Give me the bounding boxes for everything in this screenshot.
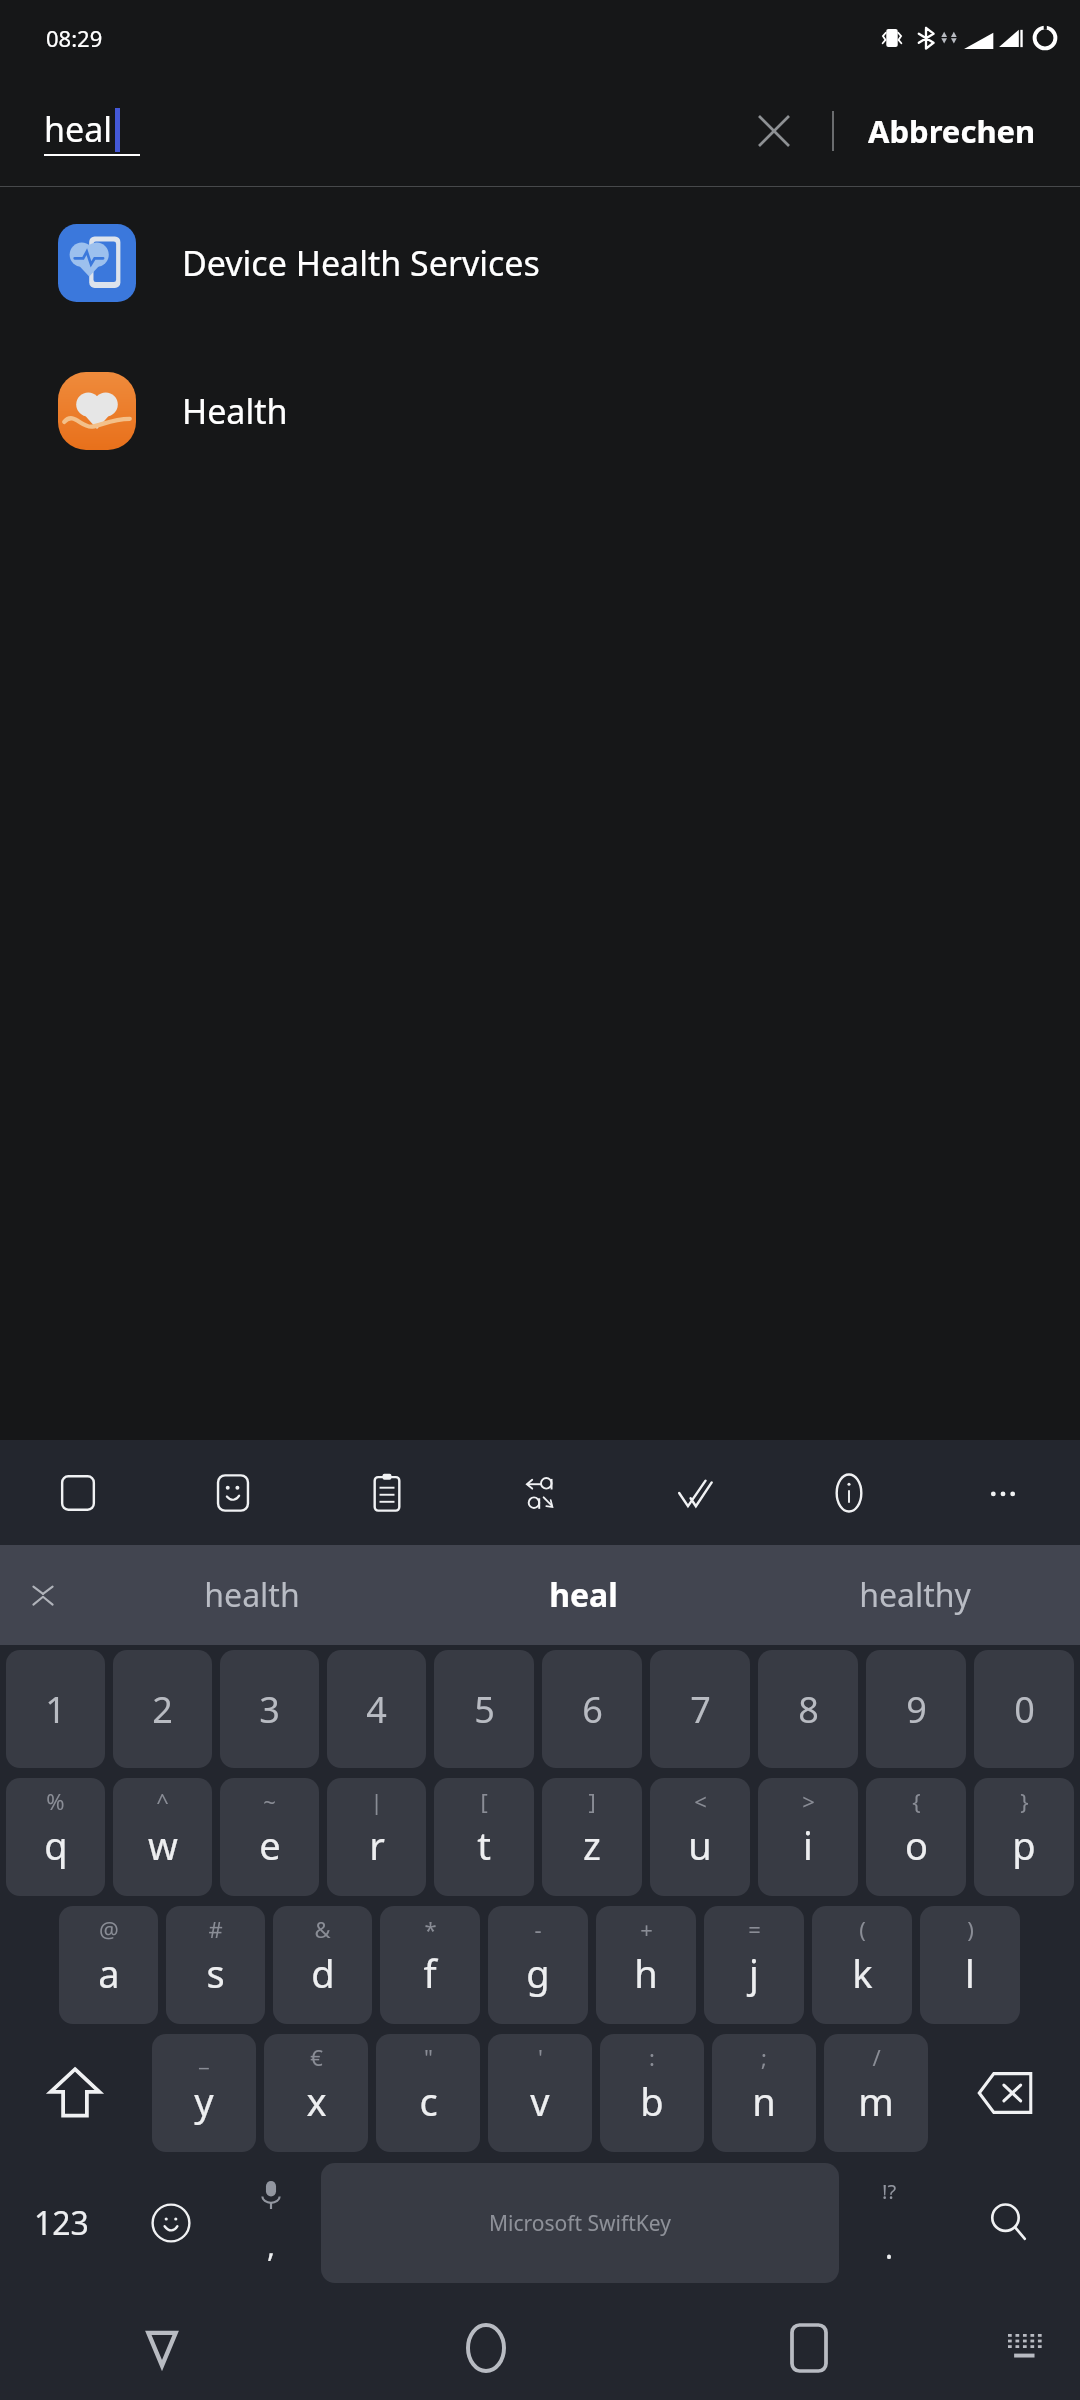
button[interactable]: ( [812, 1906, 912, 2024]
button[interactable]: Shift [2, 2029, 148, 2157]
button[interactable]: Period [839, 2157, 939, 2289]
button[interactable]: * [380, 1906, 480, 2024]
staticText: 2 [152, 1685, 173, 1734]
button[interactable]: Editing [618, 1440, 772, 1545]
button[interactable]: Home [324, 2295, 647, 2400]
button[interactable]: Backspace [932, 2029, 1078, 2157]
button[interactable]: # [166, 1906, 265, 2024]
staticText: f [423, 1947, 437, 1999]
button[interactable]: : [600, 2034, 704, 2152]
button[interactable]: 9 [866, 1650, 966, 1768]
button[interactable]: ) [920, 1906, 1020, 2024]
staticText: @ [99, 1914, 119, 1944]
staticText: : [649, 2042, 655, 2072]
button[interactable]: Close suggestions [0, 1545, 86, 1645]
button[interactable]: { [866, 1778, 966, 1896]
button[interactable]: & [273, 1906, 372, 2024]
button[interactable]: heal [418, 1545, 749, 1645]
button[interactable]: = [704, 1906, 804, 2024]
staticText: o [905, 1819, 928, 1871]
button[interactable]: Translate [464, 1440, 618, 1545]
staticText: > [802, 1786, 815, 1816]
button[interactable]: - [488, 1906, 588, 2024]
button[interactable]: GIF [0, 1440, 155, 1545]
staticText: 6 [582, 1685, 603, 1734]
staticText: 3 [259, 1685, 280, 1734]
staticText: g [526, 1947, 550, 1999]
staticText: # [208, 1914, 223, 1944]
button[interactable]: 8 [758, 1650, 858, 1768]
staticText: x [306, 2075, 327, 2127]
staticText: j [749, 1947, 759, 1999]
button[interactable]: ; [712, 2034, 816, 2152]
button[interactable]: 4 [327, 1650, 426, 1768]
staticText: q [44, 1819, 68, 1871]
button[interactable]: ' [488, 2034, 592, 2152]
button[interactable]: % [6, 1778, 105, 1896]
staticText: k [852, 1947, 873, 1999]
button[interactable]: 0 [974, 1650, 1074, 1768]
button[interactable]: | [327, 1778, 426, 1896]
button[interactable]: ] [542, 1778, 642, 1896]
button[interactable]: / [824, 2034, 928, 2152]
staticText: = [748, 1914, 761, 1944]
button[interactable]: Emoji [121, 2157, 221, 2289]
button[interactable]: + [596, 1906, 696, 2024]
staticText: 9 [906, 1685, 927, 1734]
staticText: 4 [366, 1685, 387, 1734]
button[interactable]: Info [772, 1440, 926, 1545]
staticText: } [1020, 1786, 1029, 1816]
button[interactable]: Stickers [155, 1440, 310, 1545]
button[interactable]: Microsoft SwiftKey [321, 2163, 839, 2283]
staticText: ] [588, 1786, 596, 1816]
button[interactable]: ^ [113, 1778, 212, 1896]
staticText: h [634, 1947, 658, 1999]
button[interactable]: € [264, 2034, 368, 2152]
button[interactable]: ~ [220, 1778, 319, 1896]
staticText: t [477, 1819, 491, 1871]
staticText: 8 [798, 1685, 819, 1734]
button[interactable]: @ [59, 1906, 158, 2024]
button[interactable]: healthy [749, 1545, 1080, 1645]
button[interactable]: Search [939, 2157, 1078, 2289]
button[interactable]: Comma and voice input [221, 2157, 321, 2289]
staticText: Device Health Services [182, 240, 540, 286]
button[interactable]: Clear text [742, 99, 806, 163]
staticText: 5 [474, 1685, 495, 1734]
button[interactable]: < [650, 1778, 750, 1896]
button[interactable]: health [86, 1545, 418, 1645]
button[interactable]: _ [152, 2034, 256, 2152]
button[interactable]: Recent apps [647, 2295, 970, 2400]
staticText: ~ [263, 1786, 276, 1816]
staticText: [ [480, 1786, 488, 1816]
button[interactable]: 3 [220, 1650, 319, 1768]
staticText: - [534, 1914, 542, 1944]
staticText: i [803, 1819, 813, 1871]
staticText: healthy [859, 1573, 971, 1617]
button[interactable]: > [758, 1778, 858, 1896]
button[interactable]: 1 [6, 1650, 105, 1768]
staticText: e [259, 1819, 281, 1871]
button[interactable]: Abbrechen [864, 100, 1040, 162]
staticText: ( [859, 1914, 866, 1944]
button[interactable]: } [974, 1778, 1074, 1896]
button[interactable]: 2 [113, 1650, 212, 1768]
staticText: a [98, 1947, 120, 1999]
staticText: heal [549, 1573, 618, 1617]
button[interactable]: 123 [2, 2157, 121, 2289]
staticText: !? [882, 2178, 897, 2205]
button[interactable]: Back [0, 2295, 324, 2400]
staticText: _ [199, 2042, 209, 2072]
button[interactable]: " [376, 2034, 480, 2152]
button[interactable]: 5 [434, 1650, 534, 1768]
staticText: heal [44, 106, 113, 152]
button[interactable]: Clipboard [310, 1440, 464, 1545]
button[interactable]: [ [434, 1778, 534, 1896]
button[interactable]: 6 [542, 1650, 642, 1768]
button[interactable]: Health [0, 363, 1080, 459]
button[interactable]: Hide keyboard [970, 2295, 1080, 2400]
staticText: s [206, 1947, 225, 1999]
button[interactable]: More [926, 1440, 1080, 1545]
button[interactable]: 7 [650, 1650, 750, 1768]
button[interactable]: Device Health Services [0, 215, 1080, 311]
